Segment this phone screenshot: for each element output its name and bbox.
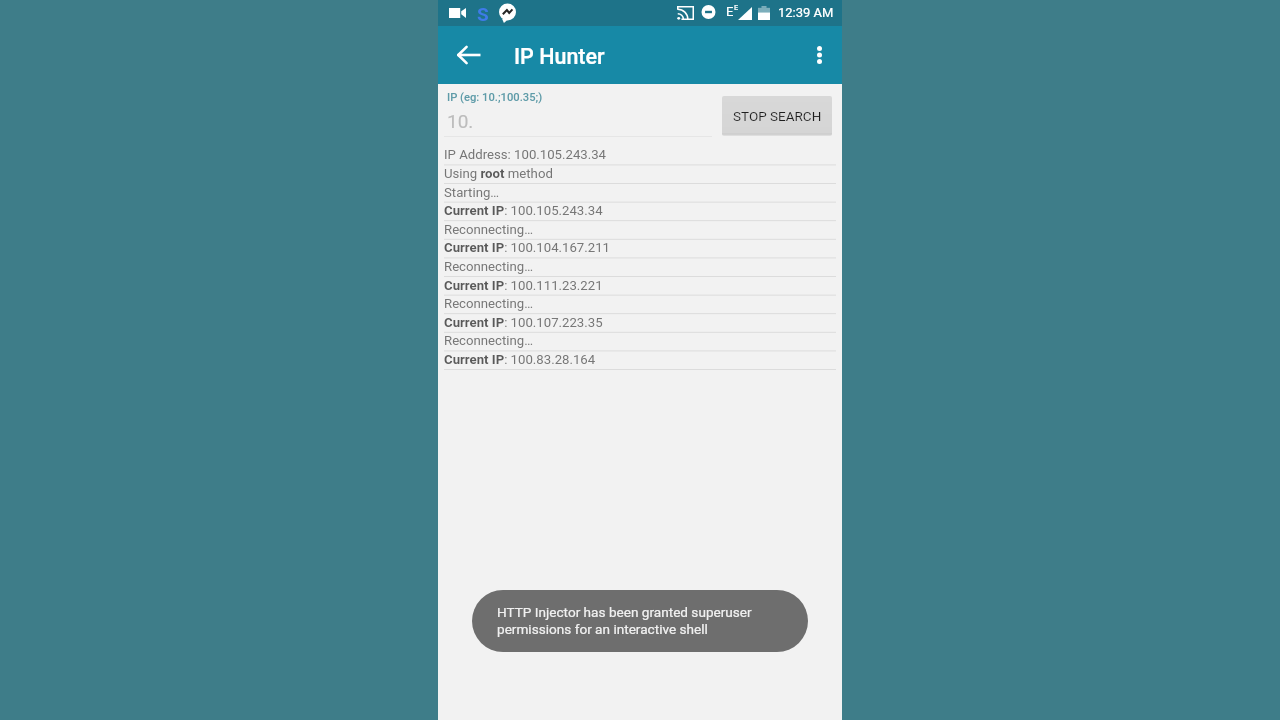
staticText: Current IP: 100.111.23.221 [444,278,603,293]
staticText: 10. [447,110,474,132]
staticText: S [477,3,489,22]
staticText: IP Address: 100.105.243.34 [444,147,607,162]
button[interactable]: Reconnecting… [438,295,842,314]
button[interactable]: IP Address: 100.105.243.34 [438,146,842,165]
button[interactable]: IP (eg: 10.;100.35;) [444,88,722,137]
staticText: IP (eg: 10.;100.35;) [447,91,543,104]
button[interactable]: Current IP: 100.107.223.35 [438,314,842,333]
staticText: STOP SEARCH [733,108,822,124]
button[interactable]: Reconnecting… [438,332,842,351]
staticText: Current IP: 100.104.167.211 [444,240,610,255]
staticText: Current IP: 100.107.223.35 [444,315,603,330]
button[interactable]: Using root method [438,165,842,184]
staticText: E [726,4,734,19]
staticText: HTTP Injector has been granted superuser… [497,604,752,637]
staticText: Using root method [444,166,553,181]
staticText: 12:39 AM [778,5,834,20]
staticText: IP Hunter [514,44,605,69]
staticText: E [734,3,739,12]
staticText: Starting… [444,185,500,200]
staticText: Reconnecting… [444,259,534,274]
staticText: Current IP: 100.83.28.164 [444,352,596,367]
button[interactable]: STOP SEARCH [722,96,832,136]
staticText: Current IP: 100.105.243.34 [444,203,603,218]
staticText: Reconnecting… [444,333,534,348]
staticText: Reconnecting… [444,296,534,311]
button[interactable]: Current IP: 100.104.167.211 [438,239,842,258]
button[interactable]: Current IP: 100.105.243.34 [438,202,842,221]
staticText: Reconnecting… [444,222,534,237]
button[interactable]: More options [799,35,839,75]
button[interactable]: Current IP: 100.111.23.221 [438,277,842,296]
button[interactable]: Starting… [438,184,842,203]
button[interactable]: Reconnecting… [438,258,842,277]
button[interactable]: Current IP: 100.83.28.164 [438,351,842,370]
button[interactable]: Navigate up [449,35,489,75]
button[interactable]: Reconnecting… [438,221,842,240]
